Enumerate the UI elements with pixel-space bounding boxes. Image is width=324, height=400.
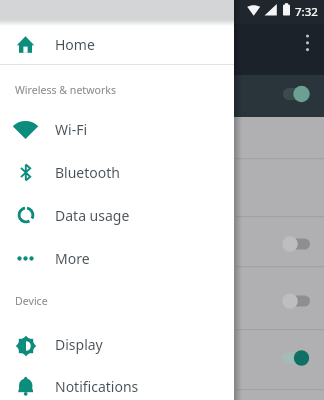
staticText: Home <box>55 35 95 54</box>
staticText: 7:32 <box>295 4 318 20</box>
staticText: Wi-Fi <box>55 120 88 139</box>
button[interactable]: Wi-Fi <box>0 108 234 151</box>
staticText: Device <box>15 294 48 308</box>
button[interactable]: Display <box>0 323 234 366</box>
button[interactable]: More <box>0 237 234 280</box>
staticText: Notifications <box>55 377 139 396</box>
staticText: More <box>55 249 90 268</box>
button[interactable]: Bluetooth <box>0 151 234 194</box>
staticText: Wireless & networks <box>15 83 117 97</box>
staticText: Bluetooth <box>55 163 120 182</box>
button[interactable]: Home <box>0 24 234 64</box>
button[interactable]: Notifications <box>0 365 234 400</box>
button[interactable]: Data usage <box>0 194 234 237</box>
staticText: Data usage <box>55 206 130 225</box>
staticText: Display <box>55 335 103 354</box>
